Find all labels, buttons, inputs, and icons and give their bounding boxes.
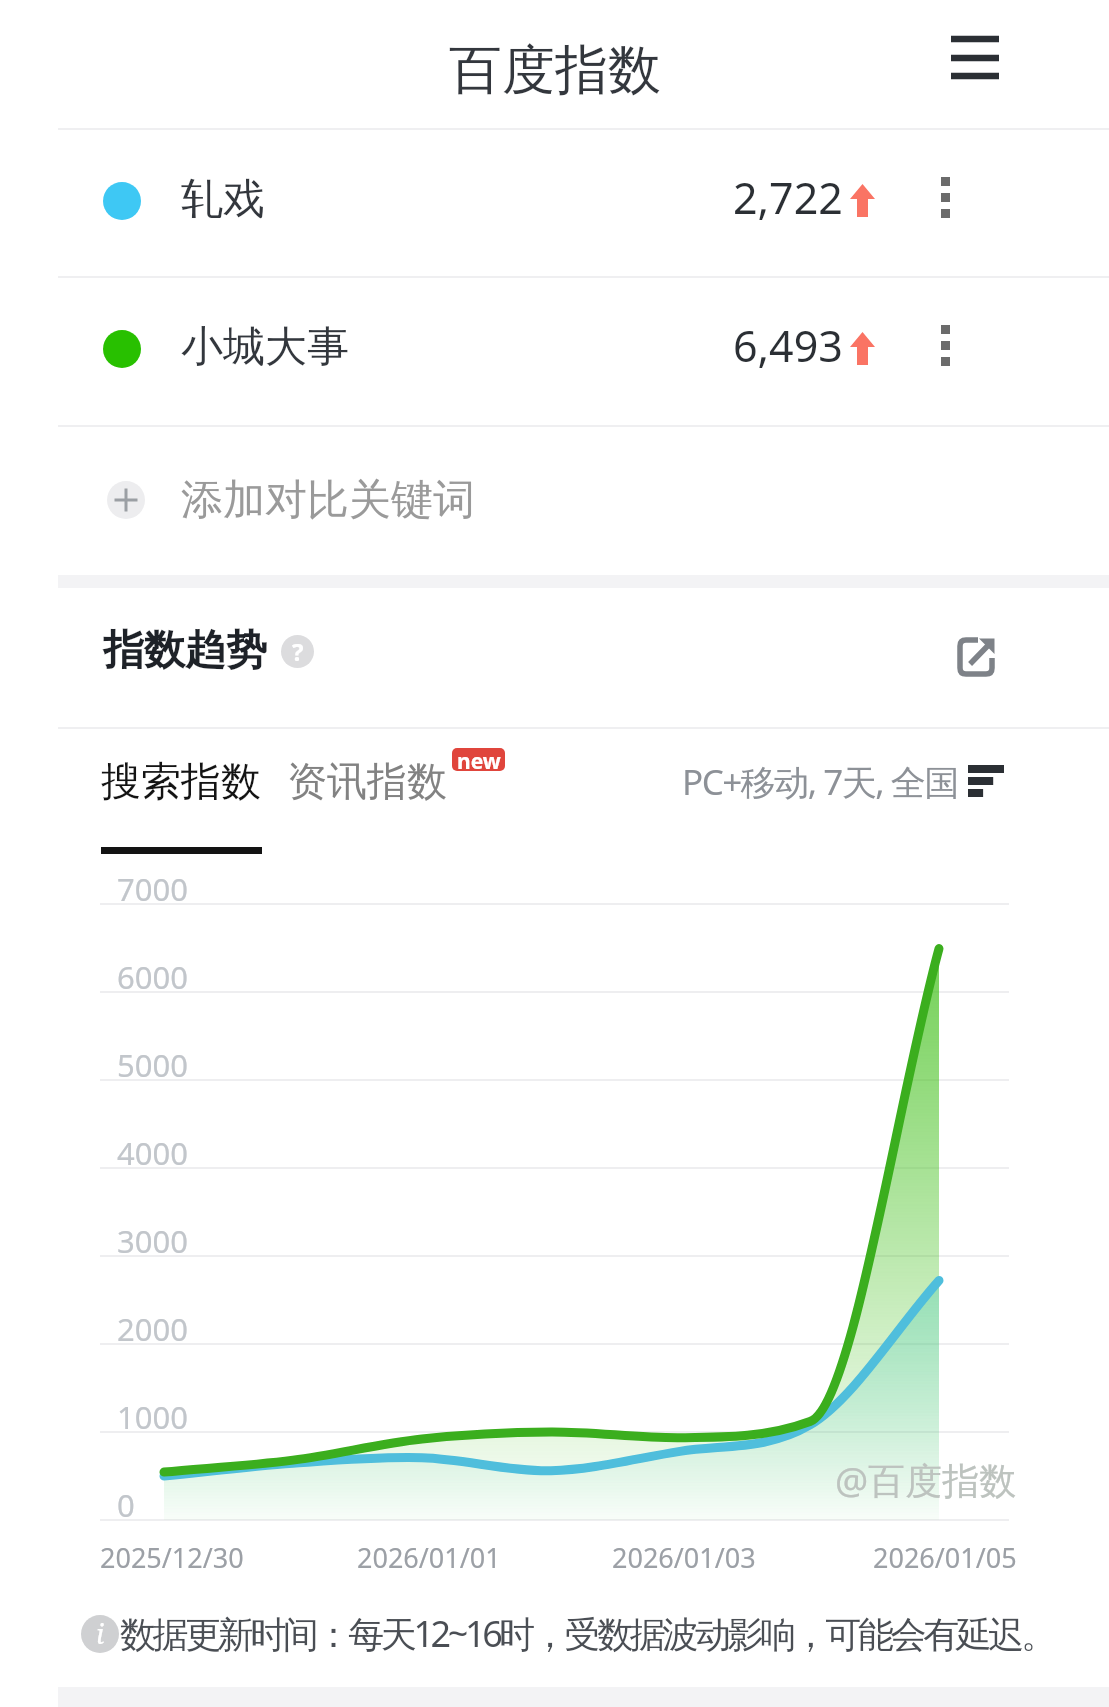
button[interactable]: 资讯指数 — [287, 756, 447, 806]
button[interactable]: Filter: PC+mobile, 7 days, nationwide — [672, 745, 1014, 825]
staticText: 2000 — [117, 1308, 188, 1350]
staticText: PC+移动, 7天, 全国 — [682, 758, 958, 806]
staticText: 6000 — [117, 956, 188, 998]
button[interactable]: More options — [921, 166, 971, 236]
staticText: 搜索指数 — [101, 756, 261, 806]
button[interactable]: 小城大事 — [0, 276, 1109, 425]
staticText: 指数趋势 — [103, 625, 267, 677]
staticText: new — [457, 748, 501, 770]
staticText: 1000 — [117, 1396, 188, 1438]
staticText: 资讯指数 — [287, 756, 447, 806]
staticText: 轧戏 — [181, 173, 265, 226]
staticText: 数据更新时间：每天12~16时，受数据波动影响，可能会有延迟。 — [120, 1609, 1054, 1658]
button[interactable]: Help — [281, 635, 314, 668]
staticText: @百度指数 — [835, 1454, 1017, 1505]
button[interactable]: More options — [921, 314, 971, 384]
staticText: 0 — [117, 1484, 135, 1526]
staticText: 添加对比关键词 — [181, 474, 475, 527]
staticText: ? — [292, 635, 304, 668]
staticText: 2026/01/05 — [873, 1539, 1017, 1576]
staticText: i — [96, 1615, 105, 1652]
staticText: 百度指数 — [449, 37, 661, 104]
staticText: 2025/12/30 — [100, 1539, 244, 1576]
staticText: 5000 — [117, 1044, 188, 1086]
staticText: 小城大事 — [181, 321, 349, 374]
button[interactable]: 轧戏 — [0, 129, 1109, 276]
button[interactable]: 搜索指数 — [101, 756, 261, 806]
staticText: 3000 — [117, 1220, 188, 1262]
staticText: 7000 — [117, 868, 188, 910]
staticText: 2026/01/03 — [612, 1539, 756, 1576]
staticText: 2,722 — [733, 168, 843, 227]
staticText: 2026/01/01 — [357, 1539, 501, 1576]
staticText: 6,493 — [733, 316, 843, 375]
staticText: 4000 — [117, 1132, 188, 1174]
button[interactable]: Open in new window — [938, 619, 1014, 695]
button[interactable]: 添加对比关键词 — [0, 425, 1109, 575]
button[interactable]: Menu — [945, 27, 1005, 87]
